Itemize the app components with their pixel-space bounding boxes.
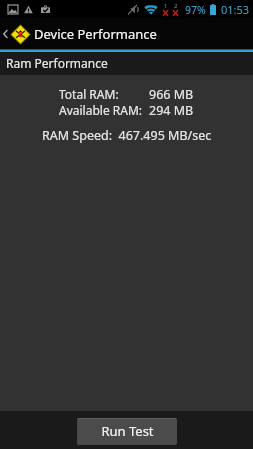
staticText: Total RAM:: [59, 86, 119, 102]
staticText: 966 MB: [149, 86, 194, 102]
staticText: 97%: [185, 3, 206, 17]
button[interactable]: Back: [0, 18, 11, 49]
button[interactable]: Run Test: [77, 418, 177, 445]
staticText: 1: [164, 2, 168, 10]
staticText: Run Test: [101, 422, 154, 440]
staticText: 01:53: [221, 2, 250, 17]
staticText: Available RAM:: [59, 102, 143, 118]
staticText: Device Performance: [34, 25, 157, 43]
staticText: Ram Performance: [6, 55, 108, 71]
staticText: 294 MB: [149, 102, 194, 118]
staticText: RAM Speed: 467.495 MB/sec: [42, 127, 212, 144]
staticText: 2: [174, 2, 178, 10]
